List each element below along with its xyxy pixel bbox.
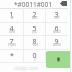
staticText: dsbjp.com [14,65,39,72]
button[interactable]: 1 [0,8,23,22]
staticText: # [54,51,59,61]
button[interactable]: # [45,49,68,63]
staticText: + [34,57,36,61]
staticText: *#0011#001 [14,0,53,8]
staticText: 3 [54,10,59,20]
staticText: 7 [9,37,14,47]
button[interactable]: 5 [23,22,46,36]
button[interactable]: * [0,49,23,63]
staticText: WXYZ [53,43,61,47]
staticText: PQRS [8,43,16,47]
staticText: 5 [32,24,37,34]
staticText: * [10,51,14,61]
staticText: 2 [32,10,37,20]
staticText: 1 [9,10,14,20]
button[interactable]: 0 [23,49,46,63]
staticText: GHI [9,30,15,34]
staticText: 4 [9,24,14,34]
button[interactable]: 2 [23,8,46,22]
button[interactable]: Backspace [58,0,69,7]
staticText: 8 [32,37,37,47]
button[interactable]: 8 [23,35,46,49]
staticText: 0 [32,51,37,61]
staticText: ABC [32,16,38,20]
button[interactable]: 3 [45,8,68,22]
button[interactable]: 7 [0,35,23,49]
staticText: DEF [54,16,60,20]
staticText: JKL [32,30,37,34]
staticText: MNO [53,30,61,34]
button[interactable]: Call [46,51,71,68]
button[interactable]: 6 [45,22,68,36]
staticText: 9 [54,37,59,47]
button[interactable]: 4 [0,22,23,36]
button[interactable]: 9 [45,35,68,49]
staticText: TUV [32,43,38,47]
staticText: 6 [54,24,59,34]
